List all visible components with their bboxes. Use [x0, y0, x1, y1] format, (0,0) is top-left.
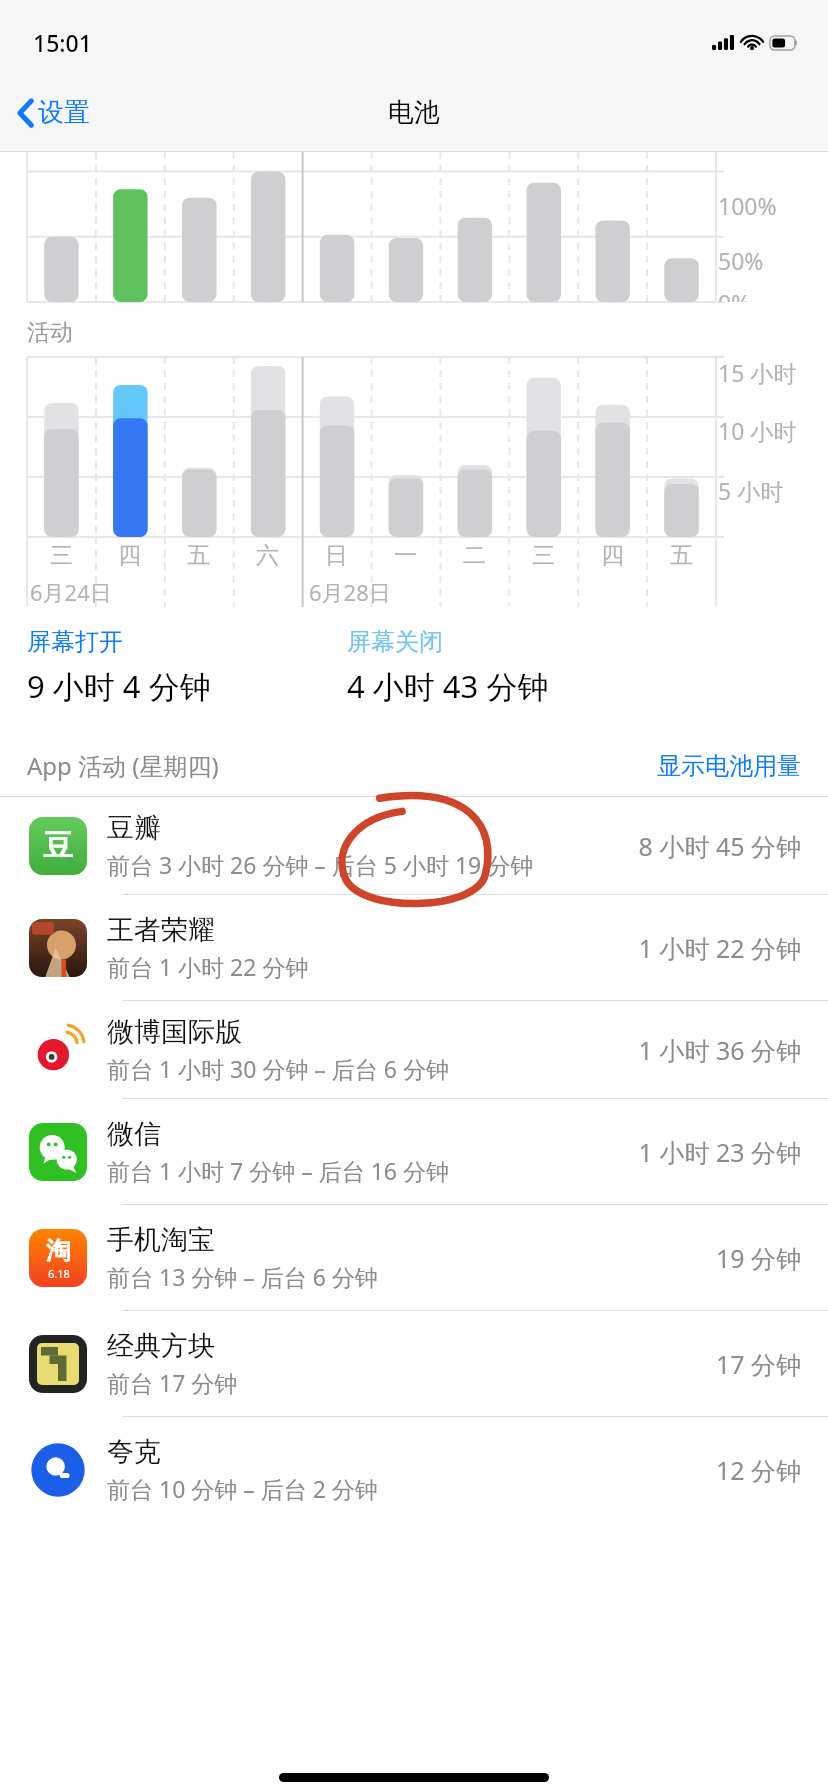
staticText: 5 小时	[718, 475, 784, 506]
other: 返回	[17, 97, 35, 129]
button[interactable]: 返回	[0, 88, 106, 137]
staticText: 王者荣耀	[107, 913, 215, 947]
staticText: 豆	[43, 827, 73, 865]
staticText: 四	[118, 541, 141, 570]
staticText: 19 分钟	[715, 1241, 801, 1275]
staticText: 100%	[718, 190, 777, 221]
staticText: 屏幕打开	[27, 627, 123, 657]
staticText: 一	[394, 541, 417, 570]
staticText: 三	[50, 541, 73, 570]
button[interactable]: 王者荣耀	[0, 895, 828, 1000]
staticText: 四	[601, 541, 624, 570]
staticText: 17 分钟	[715, 1347, 801, 1381]
staticText: 二	[463, 541, 486, 570]
button[interactable]: 显示电池用量	[657, 751, 801, 781]
staticText: 屏幕关闭	[347, 627, 443, 657]
staticText: 1 小时 36 分钟	[638, 1033, 801, 1067]
staticText: 微博国际版	[107, 1015, 242, 1049]
staticText: 前台 1 小时 22 分钟	[107, 951, 309, 982]
staticText: 15 小时	[718, 357, 797, 388]
staticText: 电池	[388, 96, 440, 129]
staticText: 经典方块	[107, 1329, 215, 1363]
staticText: 设置	[38, 96, 90, 129]
staticText: 五	[187, 541, 210, 570]
staticText: 前台 17 分钟	[107, 1367, 238, 1398]
staticText: 0%	[718, 287, 751, 302]
staticText: 前台 10 分钟 – 后台 2 分钟	[107, 1473, 378, 1504]
staticText: 1 小时 22 分钟	[638, 931, 801, 965]
button[interactable]: 豆	[0, 797, 828, 894]
button[interactable]: 微博国际版	[0, 1001, 828, 1098]
staticText: 淘	[46, 1235, 71, 1266]
staticText: 显示电池用量	[657, 751, 801, 781]
staticText: 六	[256, 541, 279, 570]
staticText: 8 小时 45 分钟	[638, 829, 801, 863]
staticText: 豆瓣	[107, 811, 161, 845]
staticText: 0 小时	[718, 533, 784, 537]
staticText: 前台 3 小时 26 分钟 – 后台 5 小时 19 分钟	[107, 849, 534, 880]
button[interactable]: 淘	[0, 1205, 828, 1310]
staticText: 前台 13 分钟 – 后台 6 分钟	[107, 1261, 378, 1292]
staticText: 4 小时 43 分钟	[347, 665, 549, 707]
button[interactable]: 微信	[0, 1099, 828, 1204]
staticText: 9 小时 4 分钟	[27, 665, 211, 707]
staticText: 活动	[27, 318, 73, 347]
staticText: App 活动 (星期四)	[27, 749, 219, 782]
staticText: 微信	[107, 1117, 161, 1151]
staticText: 三	[532, 541, 555, 570]
staticText: 6月24日	[30, 577, 112, 607]
staticText: 50%	[718, 245, 764, 276]
staticText: 6.18	[48, 1266, 70, 1281]
button[interactable]: 夸克	[0, 1417, 828, 1522]
staticText: 夸克	[107, 1435, 161, 1469]
staticText: 五	[670, 541, 693, 570]
staticText: 10 小时	[718, 415, 797, 446]
staticText: 15:01	[33, 27, 92, 58]
button[interactable]: 经典方块	[0, 1311, 828, 1416]
staticText: 6月28日	[309, 577, 391, 607]
staticText: 前台 1 小时 7 分钟 – 后台 16 分钟	[107, 1155, 449, 1186]
staticText: 手机淘宝	[107, 1223, 215, 1257]
staticText: 前台 1 小时 30 分钟 – 后台 6 分钟	[107, 1053, 449, 1084]
staticText: 12 分钟	[715, 1453, 801, 1487]
staticText: 日	[325, 541, 348, 570]
staticText: 1 小时 23 分钟	[638, 1135, 801, 1169]
